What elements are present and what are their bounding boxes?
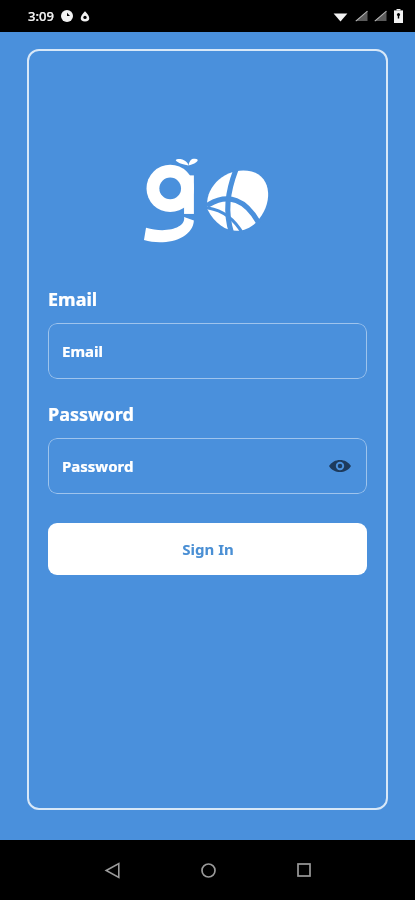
staticText: Password <box>62 456 327 476</box>
button[interactable]: Back <box>83 841 141 899</box>
button[interactable]: Recent apps <box>275 841 333 899</box>
button[interactable]: Show password <box>327 453 353 479</box>
button[interactable]: Email <box>48 323 367 379</box>
staticText: Email <box>62 341 353 361</box>
staticText: Sign In <box>182 539 234 559</box>
staticText: 3:09 <box>28 7 54 25</box>
staticText: Email <box>48 287 98 312</box>
staticText: Password <box>48 402 134 427</box>
button[interactable]: Password <box>48 438 367 494</box>
button[interactable]: Home <box>179 841 237 899</box>
button[interactable]: Sign In <box>48 523 367 575</box>
